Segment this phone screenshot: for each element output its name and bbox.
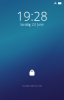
staticText: 19:28 <box>16 8 47 24</box>
staticText: Tuesday, 23 June <box>20 23 44 26</box>
staticText: Touch ID or Enter Passcode <box>22 85 42 87</box>
